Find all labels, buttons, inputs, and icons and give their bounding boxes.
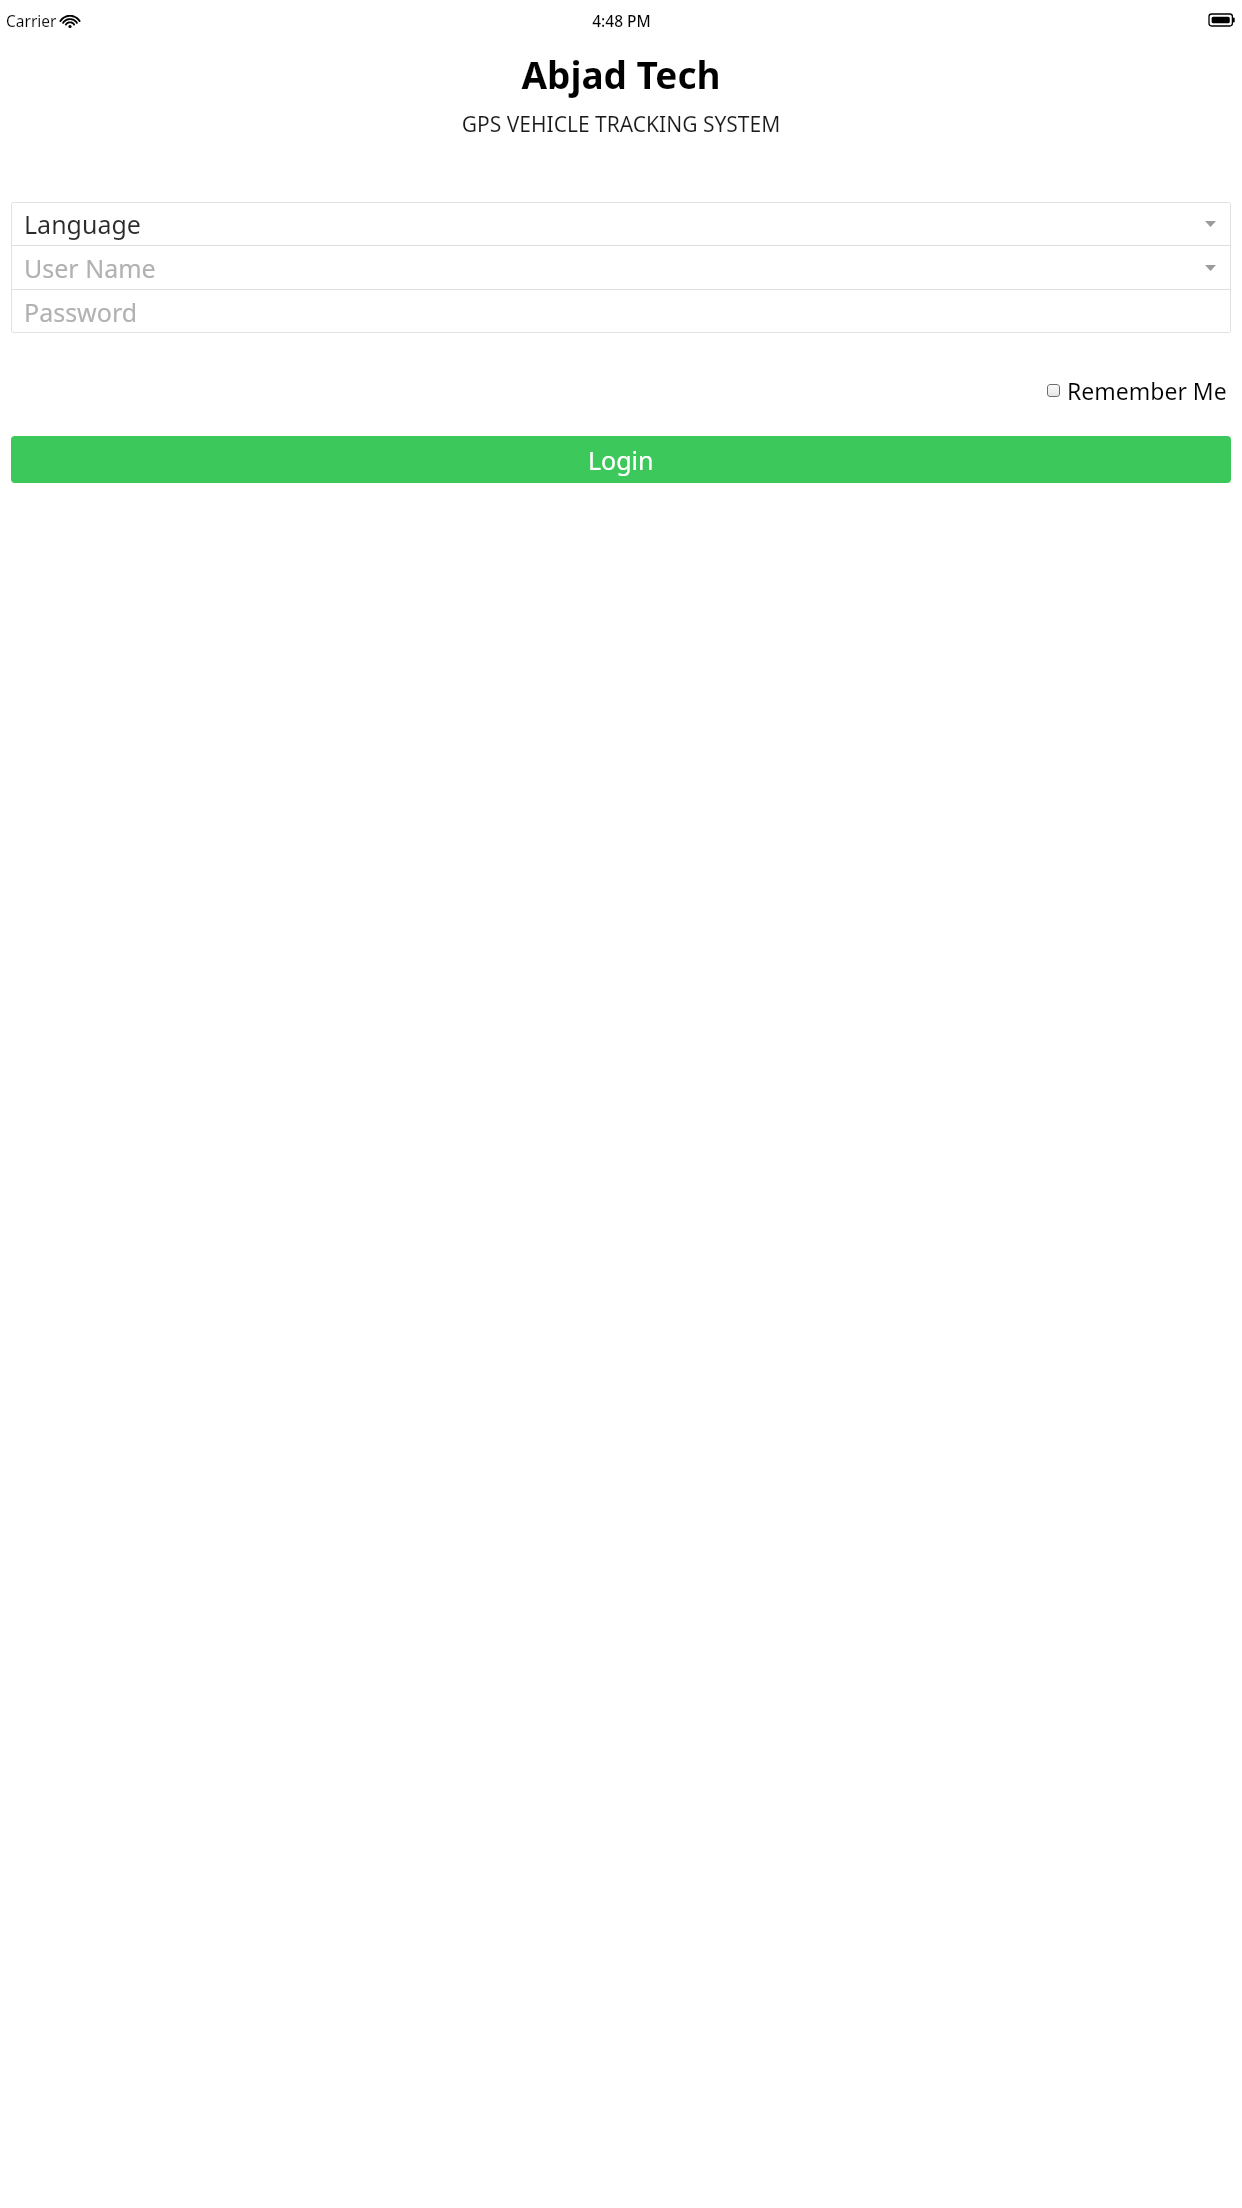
staticText: 4:48 PM: [592, 10, 651, 31]
staticText: Password: [24, 295, 138, 329]
other: Open User Name dropdown: [1202, 260, 1218, 276]
other: Battery full: [1209, 14, 1235, 26]
button[interactable]: User Name: [11, 246, 1231, 289]
staticText: Login: [588, 443, 654, 477]
other: Open Language dropdown: [1202, 216, 1218, 232]
button[interactable]: Language: [11, 202, 1231, 245]
staticText: Language: [24, 207, 141, 241]
staticText: Remember Me: [1067, 375, 1227, 406]
staticText: User Name: [24, 251, 156, 285]
staticText: Abjad Tech: [0, 49, 1242, 99]
staticText: GPS VEHICLE TRACKING SYSTEM: [0, 110, 1242, 139]
button[interactable]: Login: [11, 436, 1231, 483]
button[interactable]: Password: [11, 290, 1231, 333]
staticText: Carrier: [6, 10, 57, 31]
other: Wi-Fi: [62, 15, 78, 27]
button[interactable]: Remember Me: [1045, 371, 1229, 410]
